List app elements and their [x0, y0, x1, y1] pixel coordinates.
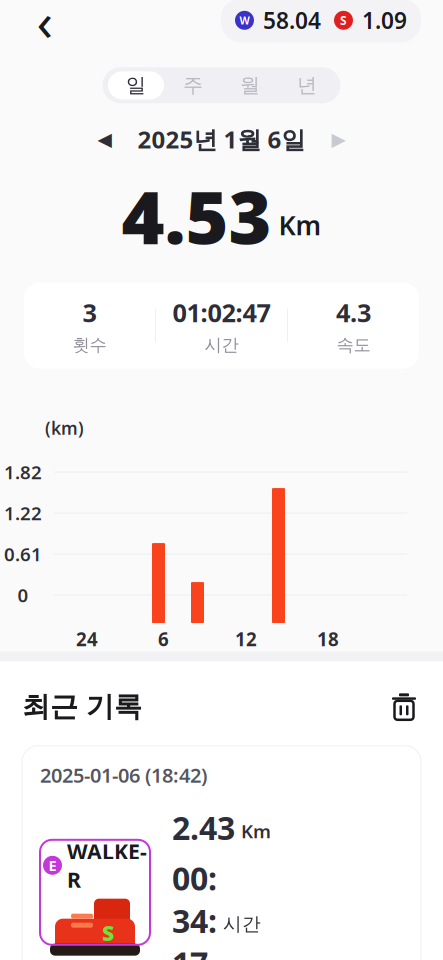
staticText: 4.3 — [336, 296, 371, 329]
staticText: 1.82 — [4, 460, 42, 484]
staticText: Km — [241, 819, 271, 843]
staticText: ‹ — [36, 0, 53, 56]
staticText: 일 — [126, 73, 146, 98]
button[interactable]: Next day — [321, 124, 355, 154]
staticText: 시간 — [223, 913, 261, 935]
staticText: W — [239, 13, 249, 27]
button[interactable]: W — [221, 0, 421, 42]
staticText: 년 — [297, 73, 317, 98]
staticText: 2.43 — [172, 806, 235, 849]
staticText: 24 — [76, 627, 98, 651]
staticText: 1.09 — [362, 5, 407, 35]
staticText: 시간 — [204, 334, 238, 355]
staticText: S — [340, 12, 347, 28]
button[interactable]: 월 — [221, 71, 278, 99]
staticText: 2025-01-06 (18:42) — [40, 762, 207, 788]
staticText: 주 — [183, 73, 203, 98]
staticText: ◀ — [97, 129, 111, 150]
staticText: E — [48, 856, 56, 875]
staticText: S — [102, 918, 114, 947]
staticText: 3 — [82, 296, 96, 329]
staticText: WALKER — [67, 837, 147, 894]
staticText: Km — [278, 207, 321, 243]
button[interactable]: Back — [22, 0, 68, 43]
staticText: 최근 기록 — [22, 689, 142, 724]
button[interactable]: 일 — [107, 71, 164, 99]
staticText: 2025년 1월 6일 — [137, 123, 305, 155]
staticText: 01:02:47 — [172, 296, 270, 329]
staticText: 0 — [17, 583, 28, 607]
staticText: 횟수 — [72, 334, 106, 355]
staticText: 0.61 — [4, 542, 42, 566]
staticText: 4.53 — [121, 167, 271, 265]
staticText: ▶ — [331, 129, 345, 150]
button[interactable]: 년 — [278, 71, 335, 99]
staticText: (km) — [45, 417, 84, 440]
staticText: 00:34:17 — [172, 857, 217, 960]
staticText: 58.04 — [263, 5, 321, 35]
button[interactable]: Previous day — [87, 124, 121, 154]
staticText: 속도 — [336, 334, 370, 355]
staticText: 1.22 — [4, 501, 42, 525]
button[interactable]: Delete records — [387, 690, 421, 724]
staticText: 6 — [158, 627, 169, 651]
button[interactable]: 2025-01-06 (18:42) — [22, 746, 421, 960]
button[interactable]: 주 — [164, 71, 221, 99]
staticText: 12 — [235, 627, 257, 651]
staticText: 월 — [240, 73, 260, 98]
staticText: 18 — [317, 627, 339, 651]
